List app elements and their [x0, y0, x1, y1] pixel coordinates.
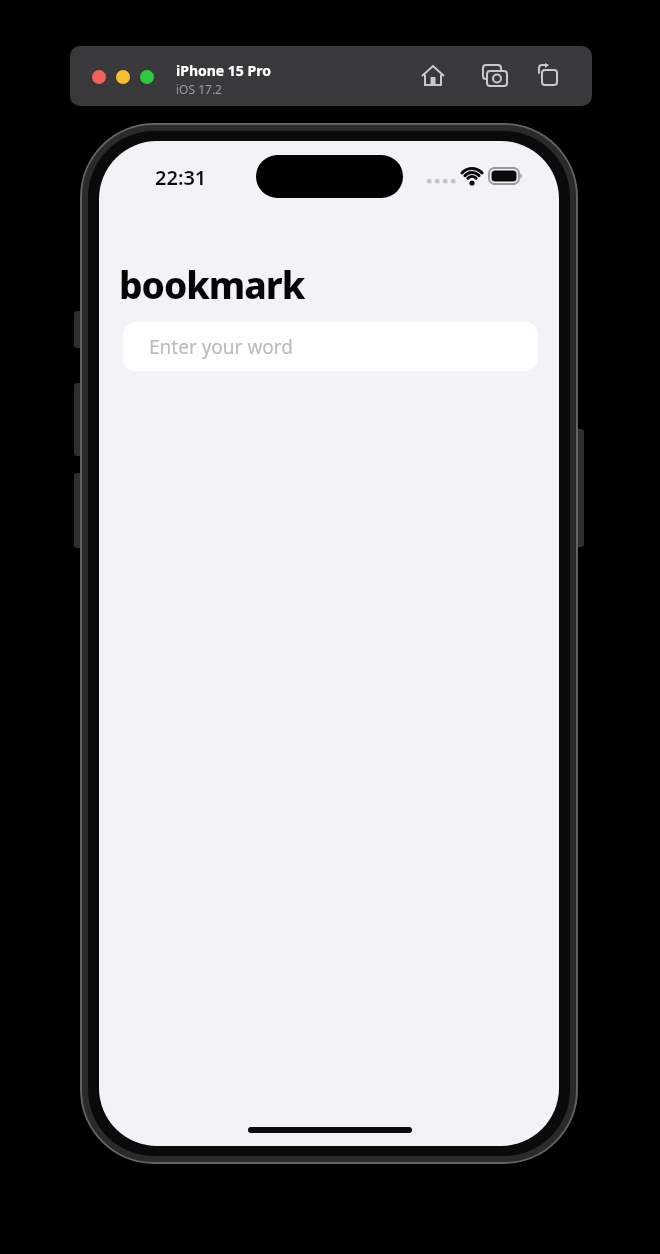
staticText: iOS 17.2	[176, 81, 222, 97]
button[interactable]: Enter your word	[123, 322, 538, 371]
staticText: Enter your word	[149, 334, 293, 360]
button[interactable]	[140, 70, 154, 84]
staticText: bookmark	[119, 259, 305, 309]
button[interactable]	[420, 63, 446, 89]
button[interactable]	[116, 70, 130, 84]
button[interactable]	[536, 63, 562, 89]
button[interactable]	[480, 63, 508, 91]
button[interactable]	[92, 70, 106, 84]
staticText: 22:31	[155, 164, 207, 191]
staticText: iPhone 15 Pro	[176, 61, 271, 80]
